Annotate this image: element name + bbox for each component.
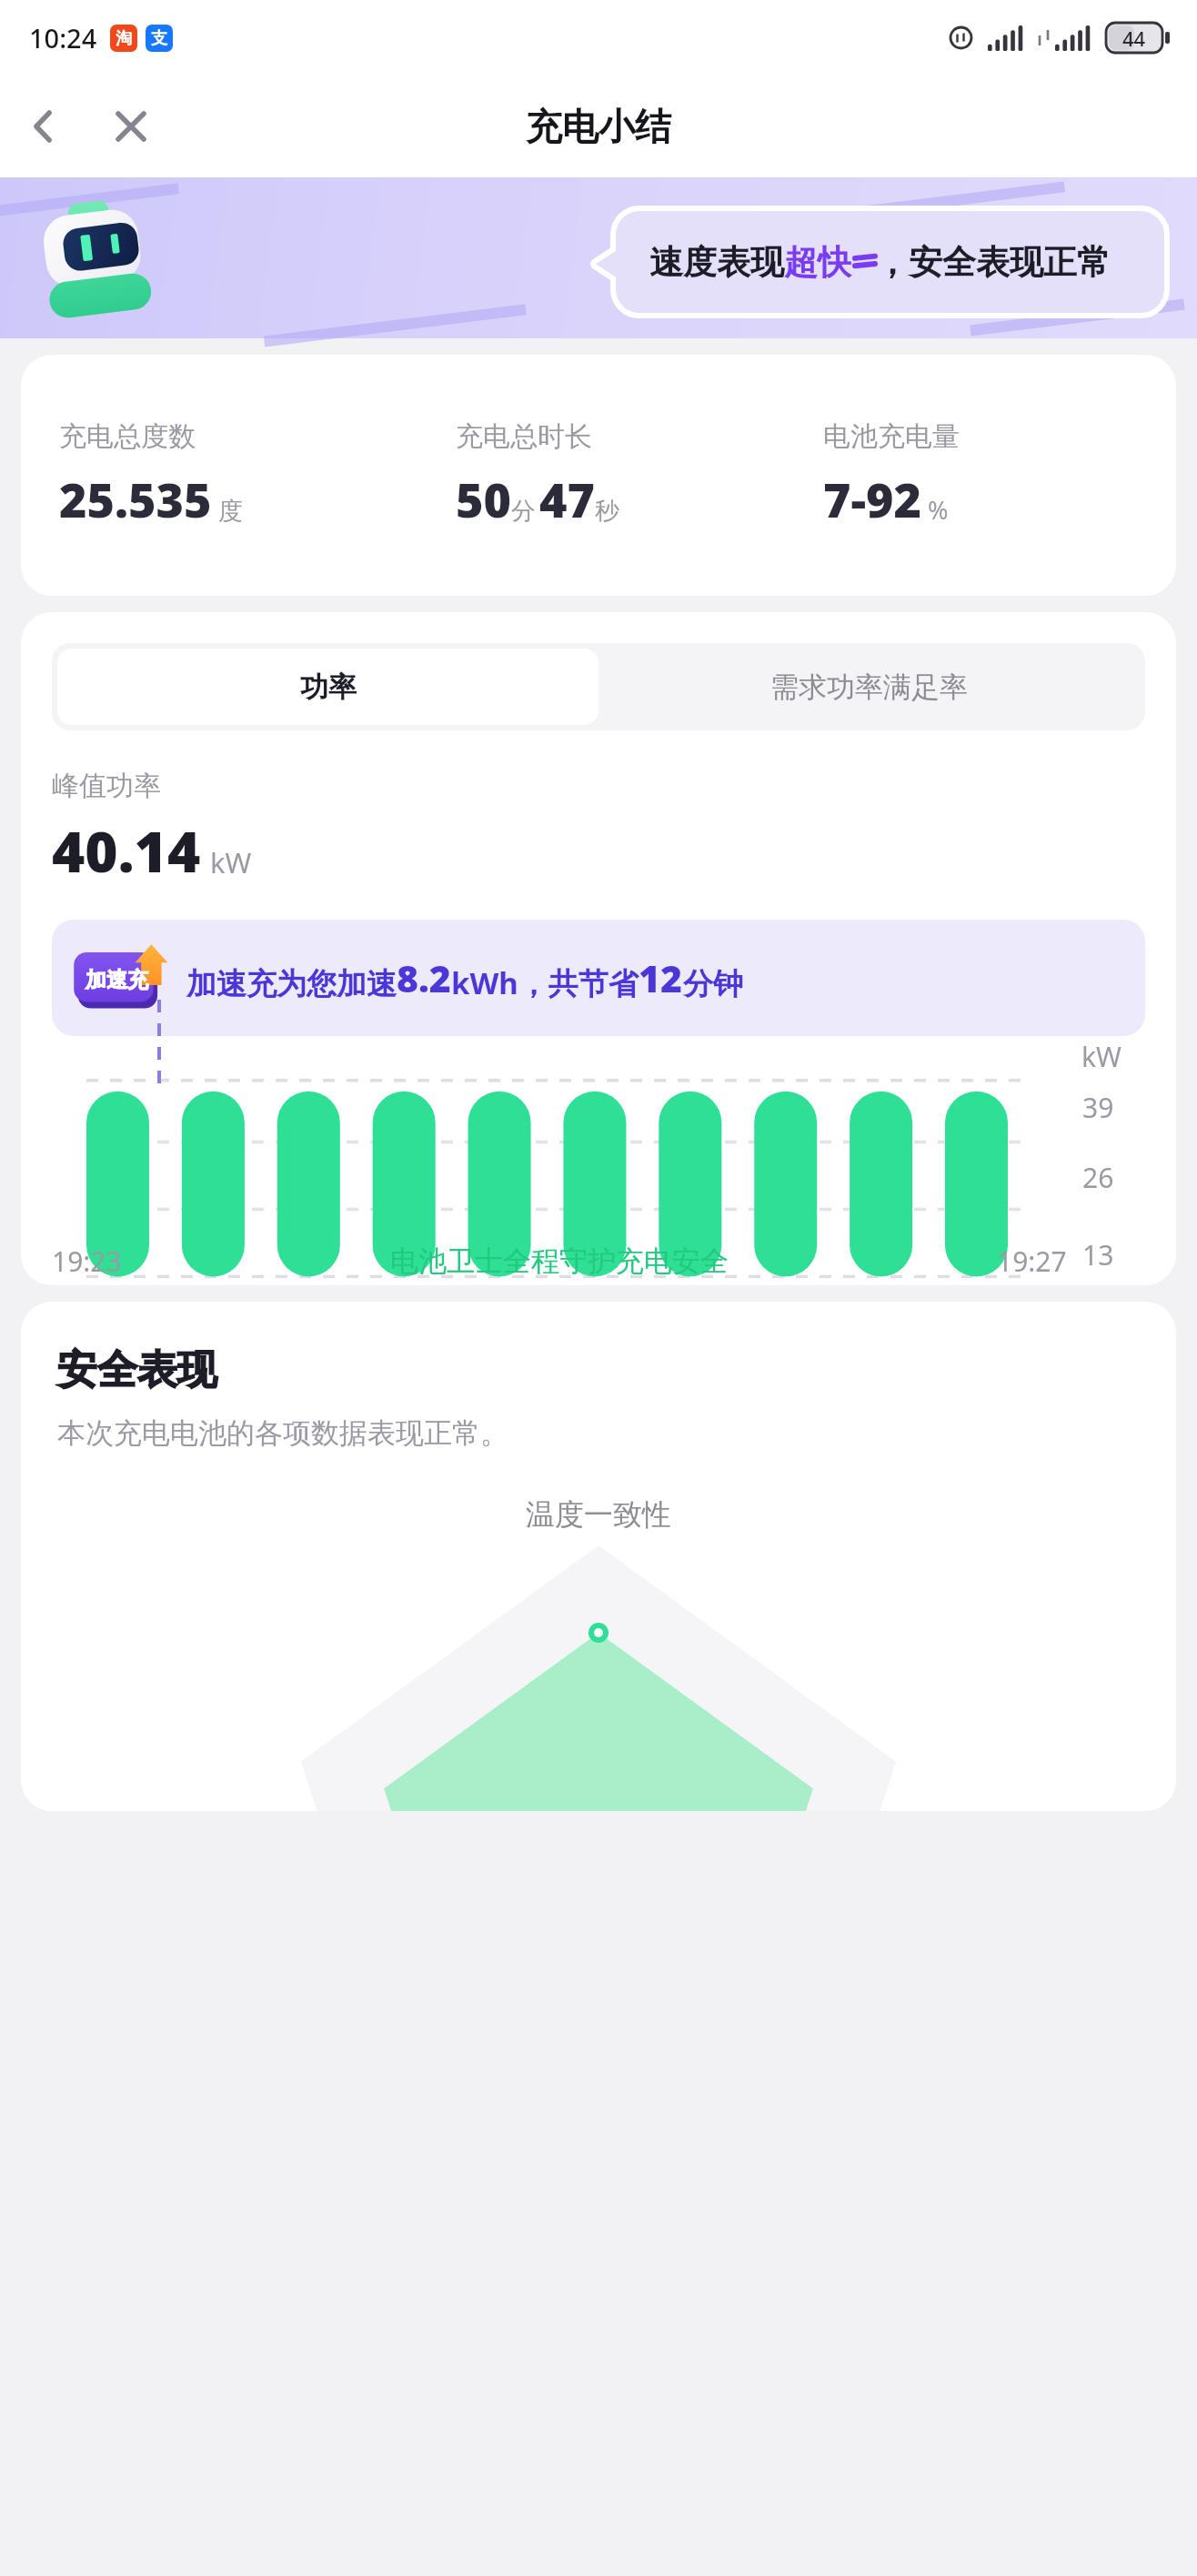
staticText: 秒 [595, 496, 619, 527]
button[interactable]: Back [0, 83, 87, 170]
staticText: 充电小结 [526, 104, 671, 149]
button[interactable]: Close [87, 83, 175, 170]
button[interactable]: 功率 [57, 649, 598, 725]
staticText: 47 [539, 467, 595, 531]
staticText: kW [1081, 1038, 1122, 1075]
staticText: 支 [151, 28, 167, 49]
staticText: kWh，共节省 [451, 962, 639, 1003]
staticText: 12 [639, 952, 683, 1003]
button[interactable]: 需求功率满足率 [598, 649, 1140, 725]
staticText: 电池充电量 [823, 419, 960, 454]
staticText: 加速充 [85, 967, 148, 993]
staticText: 安全表现 [57, 1345, 217, 1395]
staticText: 分钟 [683, 965, 743, 1003]
staticText: 26 [1082, 1159, 1114, 1196]
staticText: 本次充电电池的各项数据表现正常。 [57, 1415, 508, 1451]
staticText: 需求功率满足率 [770, 669, 968, 705]
staticText: 44 [1122, 25, 1146, 52]
staticText: 速度表现超快 [649, 241, 851, 284]
staticText: 充电总时长 [456, 419, 592, 454]
staticText: 充电总度数 [59, 419, 196, 454]
staticText: 25.535 [59, 467, 212, 531]
staticText: 加速充为您加速 [186, 965, 397, 1003]
staticText: 10:24 [29, 20, 97, 55]
staticText: 39 [1082, 1089, 1114, 1126]
staticText: ，安全表现正常 [875, 241, 1111, 284]
staticText: 电池卫士全程守护充电安全 [390, 1243, 729, 1279]
staticText: 19:27 [997, 1243, 1067, 1280]
staticText: 19:23 [52, 1243, 122, 1280]
staticText: 度 [218, 496, 243, 527]
staticText: 40.14 [52, 812, 201, 889]
staticText: 7-92 [823, 467, 921, 531]
staticText: 峰值功率 [52, 769, 161, 803]
staticText: % [928, 493, 949, 527]
staticText: 功率 [300, 669, 357, 705]
staticText: kW [210, 843, 252, 881]
staticText: 淘 [116, 28, 132, 49]
staticText: 13 [1082, 1236, 1114, 1273]
staticText: 分 [511, 496, 536, 527]
staticText: 温度一致性 [526, 1496, 671, 1533]
staticText: 8.2 [397, 952, 451, 1003]
staticText: 50 [456, 467, 511, 531]
